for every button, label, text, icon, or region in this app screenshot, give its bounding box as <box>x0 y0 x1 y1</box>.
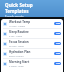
button[interactable]: Focus Session <box>1 39 63 48</box>
staticText: Quick Setup <box>5 2 33 8</box>
staticText: 5 ready presets <box>5 15 24 17</box>
staticText: Templates <box>5 8 29 14</box>
staticText: 12 min · Cardio <box>9 25 26 28</box>
staticText: Use <box>56 22 60 25</box>
staticText: Every 2 hours <box>9 55 24 58</box>
button[interactable]: Workout Temp <box>1 19 63 28</box>
staticText: Use <box>56 62 60 65</box>
button[interactable]: Hydration Plan <box>1 49 63 58</box>
button[interactable]: Use <box>54 52 61 55</box>
staticText: Hydration Plan <box>9 50 31 54</box>
button[interactable]: Use <box>54 32 61 35</box>
staticText: 8 hrs · Night <box>9 35 23 38</box>
button[interactable]: Morning Start <box>1 59 63 68</box>
staticText: Sleep Routine <box>9 30 29 34</box>
button[interactable]: Use <box>54 42 61 45</box>
staticText: Morning Start <box>9 60 30 64</box>
staticText: 6 steps · Daily <box>9 65 24 68</box>
staticText: Focus Session <box>9 40 29 44</box>
button[interactable]: Sleep Routine <box>1 29 63 38</box>
staticText: Use <box>56 32 60 35</box>
button[interactable]: Use <box>54 22 61 25</box>
button[interactable]: Use <box>54 62 61 65</box>
staticText: Use <box>56 42 60 45</box>
staticText: Workout Temp <box>9 20 31 24</box>
staticText: 25 min · Deep <box>9 45 24 48</box>
staticText: Use <box>56 52 60 55</box>
